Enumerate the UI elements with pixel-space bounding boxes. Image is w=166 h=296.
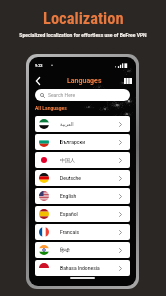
- button[interactable]: Български: [35, 134, 130, 150]
- staticText: Español: [60, 211, 78, 217]
- staticText: Search Here: [48, 92, 76, 98]
- button[interactable]: العربية: [35, 116, 130, 132]
- button[interactable]: Search Here: [35, 89, 130, 101]
- staticText: 中国人: [60, 157, 75, 163]
- staticText: Languages: [67, 77, 102, 85]
- button[interactable]: Deutsche: [35, 170, 130, 186]
- staticText: Deutsche: [60, 175, 82, 181]
- staticText: Francais: [60, 229, 80, 235]
- button[interactable]: Current language: [122, 75, 134, 87]
- staticText: Bahasa Indonesia: [60, 265, 100, 271]
- staticText: 9:23: [35, 63, 43, 67]
- button[interactable]: Bahasa Indonesia: [35, 260, 130, 276]
- staticText: हिन्दी: [60, 247, 70, 254]
- staticText: العربية: [60, 121, 74, 127]
- button[interactable]: Español: [35, 206, 130, 222]
- button[interactable]: 中国人: [35, 152, 130, 168]
- button[interactable]: Francais: [35, 224, 130, 240]
- staticText: English: [60, 193, 77, 199]
- staticText: Specialized localization for effortless …: [19, 32, 147, 38]
- staticText: All Languages: [35, 105, 67, 111]
- staticText: Български: [60, 139, 86, 145]
- staticText: Localization: [43, 9, 124, 28]
- button[interactable]: हिन्दी: [35, 242, 130, 258]
- button[interactable]: English: [35, 188, 130, 204]
- button[interactable]: Back: [32, 75, 44, 87]
